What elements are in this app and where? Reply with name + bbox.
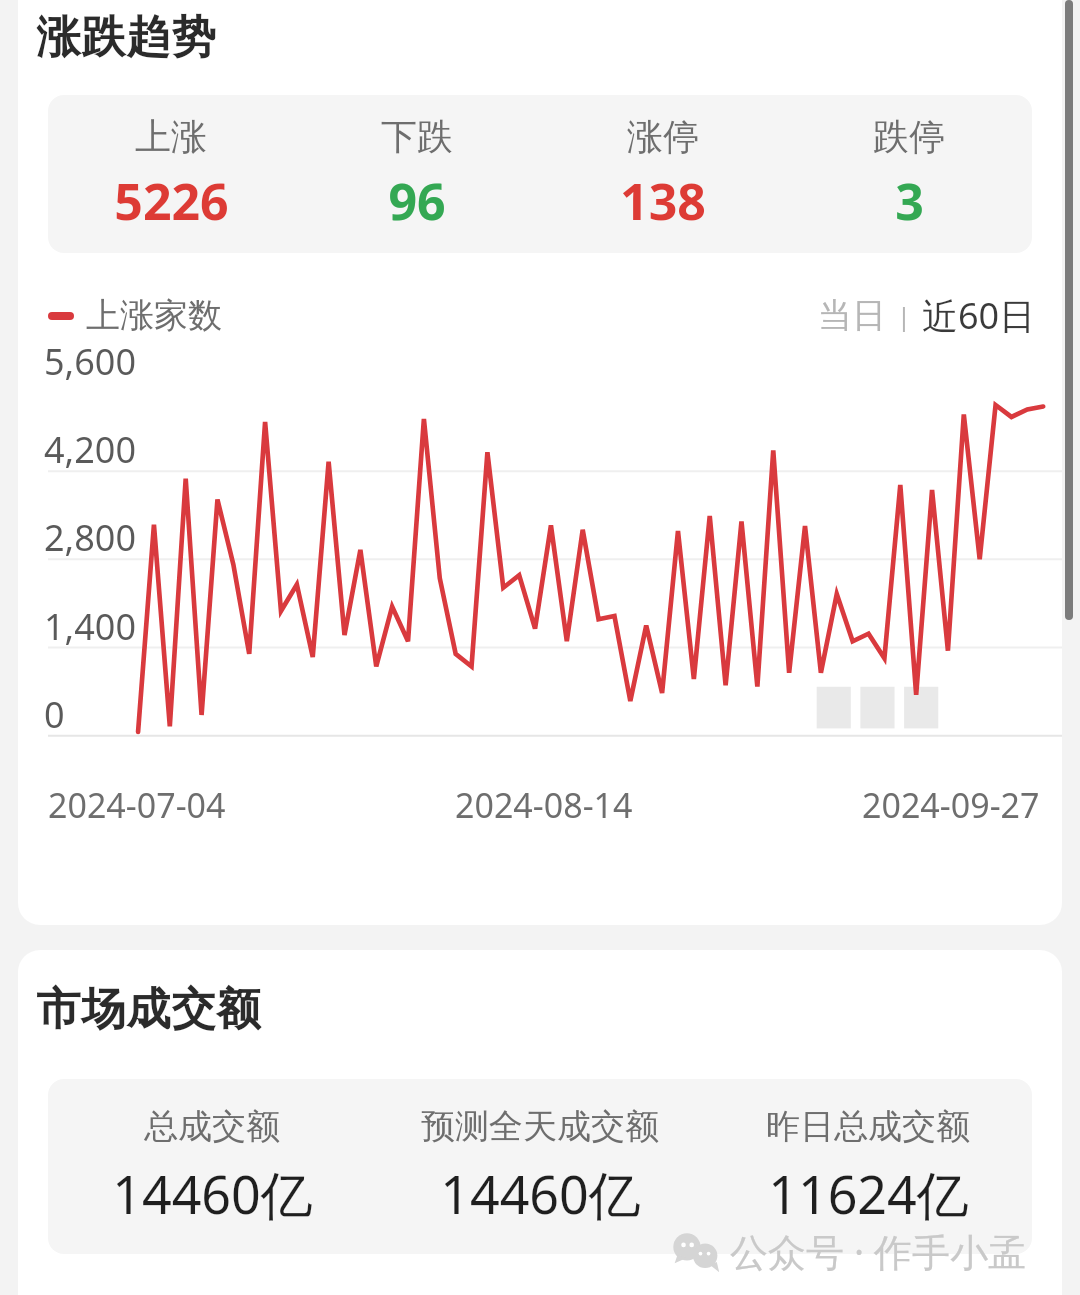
staticText: 14460亿 <box>440 1158 641 1229</box>
staticText: 3 <box>895 167 924 235</box>
staticText: 2,800 <box>44 513 137 562</box>
staticText: 5,600 <box>44 337 137 386</box>
button[interactable]: 昨日总成交额 <box>704 1079 1032 1254</box>
staticText: 5226 <box>114 167 229 235</box>
staticText: 上涨 <box>135 114 207 159</box>
staticText: 2024-09-27 <box>862 782 1040 828</box>
staticText: 近60日 <box>922 291 1036 340</box>
button[interactable]: 近60日 <box>918 291 1040 340</box>
button[interactable]: 当日 <box>814 294 890 337</box>
staticText: 跌停 <box>873 114 945 159</box>
staticText: 下跌 <box>381 114 453 159</box>
staticText: 公众号 · 作手小孟 <box>730 1225 1026 1277</box>
button[interactable]: 跌停 <box>786 95 1032 253</box>
staticText: 昨日总成交额 <box>766 1105 970 1148</box>
staticText: 当日 <box>818 294 886 337</box>
staticText: 4,200 <box>44 425 137 474</box>
staticText: 涨跌趋势 <box>36 10 216 65</box>
staticText: 0 <box>44 690 65 739</box>
staticText: 11624亿 <box>768 1158 969 1229</box>
button[interactable]: 公众号 作手小孟 <box>674 1225 1026 1277</box>
button[interactable]: 上涨 <box>48 95 294 253</box>
staticText: 上涨家数 <box>86 294 222 337</box>
staticText: 14460亿 <box>112 1158 313 1229</box>
staticText: 1,400 <box>44 602 137 651</box>
staticText: 2024-08-14 <box>455 782 633 828</box>
button[interactable]: 涨停 <box>540 95 786 253</box>
staticText: 96 <box>388 167 446 235</box>
staticText: 总成交额 <box>144 1105 280 1148</box>
staticText: | <box>890 298 918 333</box>
staticText: 涨停 <box>627 114 699 159</box>
staticText: 预测全天成交额 <box>421 1105 659 1148</box>
button[interactable]: 下跌 <box>294 95 540 253</box>
staticText: 138 <box>620 167 706 235</box>
staticText: 2024-07-04 <box>48 782 226 828</box>
button[interactable]: 总成交额 <box>48 1079 376 1254</box>
staticText: 市场成交额 <box>36 982 261 1037</box>
button[interactable]: 预测全天成交额 <box>376 1079 704 1254</box>
